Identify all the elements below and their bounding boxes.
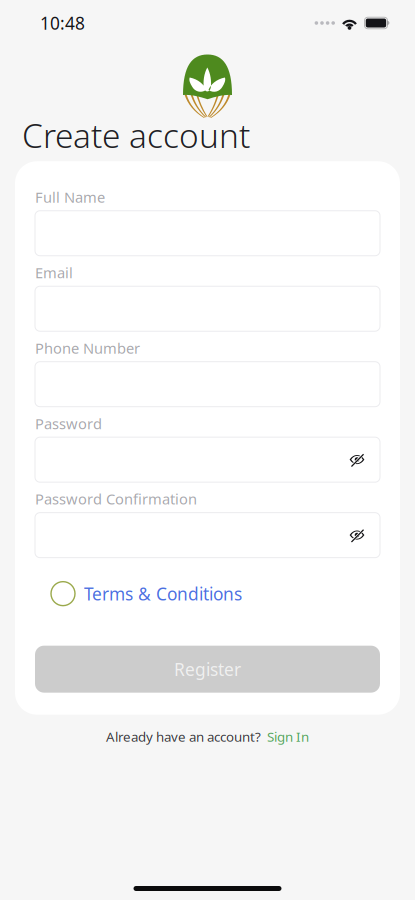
- button[interactable]: Show password: [334, 513, 380, 558]
- button[interactable]: Register: [35, 646, 380, 693]
- staticText: Sign In: [267, 728, 309, 745]
- button[interactable]: Terms & Conditions: [35, 582, 380, 606]
- staticText: Terms & Conditions: [84, 582, 242, 605]
- staticText: Password: [35, 414, 102, 433]
- staticText: Already have an account?: [106, 728, 261, 745]
- staticText: Register: [174, 658, 241, 681]
- button[interactable]: Show password: [334, 437, 380, 482]
- staticText: 10:48: [40, 11, 85, 34]
- staticText: Full Name: [35, 187, 105, 207]
- staticText: Password Confirmation: [35, 489, 197, 509]
- staticText: Create account: [22, 113, 250, 157]
- staticText: Phone Number: [35, 338, 140, 358]
- staticText: Email: [35, 263, 73, 282]
- button[interactable]: Sign In: [267, 728, 309, 745]
